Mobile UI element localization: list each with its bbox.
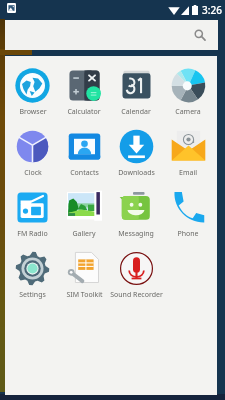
staticText: Messaging <box>118 229 154 239</box>
staticText: Calculator <box>67 107 101 117</box>
button[interactable]: Camera <box>162 68 214 117</box>
staticText: Phone <box>177 229 199 239</box>
staticText: Gallery <box>72 229 96 239</box>
button[interactable]: Email <box>162 129 214 178</box>
button[interactable]: Downloads <box>110 129 162 178</box>
button[interactable]: Browser <box>7 68 58 117</box>
button[interactable]: Calendar <box>110 68 162 117</box>
button[interactable]: Settings <box>7 251 58 300</box>
staticText: Sound Recorder <box>110 290 162 300</box>
staticText: Clock <box>24 168 42 178</box>
staticText: Downloads <box>118 168 155 178</box>
button[interactable]: Messaging <box>110 190 162 239</box>
button[interactable]: Contacts <box>58 129 110 178</box>
button[interactable]: FM Radio <box>7 190 58 239</box>
staticText: Calendar <box>121 107 151 117</box>
staticText: FM Radio <box>17 229 48 239</box>
button[interactable]: Sound Recorder <box>110 251 162 300</box>
button[interactable]: Clock <box>7 129 58 178</box>
staticText: Settings <box>19 290 46 300</box>
staticText: Browser <box>19 107 47 117</box>
staticText: Contacts <box>70 168 99 178</box>
button[interactable]: Calculator <box>58 68 110 117</box>
button[interactable]: Search <box>5 20 218 50</box>
staticText: Camera <box>175 107 201 117</box>
staticText: Email <box>179 168 197 178</box>
staticText: SIM Toolkit <box>66 290 103 300</box>
button[interactable]: SIM Toolkit <box>58 251 110 300</box>
button[interactable]: Gallery <box>58 190 110 239</box>
staticText: 3:26 <box>202 3 222 17</box>
button[interactable]: Phone <box>162 190 214 239</box>
